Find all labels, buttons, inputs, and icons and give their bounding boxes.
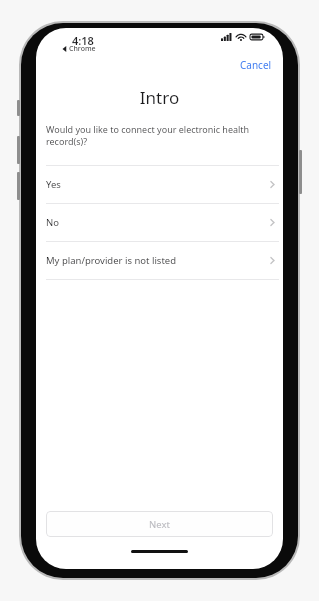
button[interactable]: Yes bbox=[36, 166, 283, 203]
button[interactable]: Next bbox=[46, 511, 273, 537]
button[interactable]: Cancel bbox=[229, 55, 283, 75]
staticText: Intro bbox=[36, 86, 283, 109]
button[interactable]: No bbox=[36, 204, 283, 241]
staticText: My plan/provider is not listed bbox=[46, 254, 177, 267]
staticText: Yes bbox=[46, 178, 61, 191]
staticText: Would you like to connect your electroni… bbox=[46, 123, 267, 148]
staticText: No bbox=[46, 216, 59, 229]
button[interactable]: My plan/provider is not listed bbox=[36, 242, 283, 279]
staticText: Next bbox=[149, 518, 170, 531]
staticText: 4:18 bbox=[72, 33, 94, 48]
staticText: Cancel bbox=[240, 58, 272, 72]
staticText: Chrome bbox=[69, 44, 96, 54]
